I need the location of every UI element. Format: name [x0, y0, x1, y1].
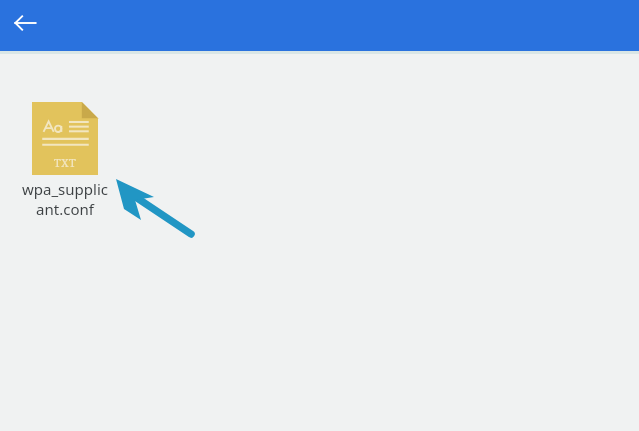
staticText: wpa_supplicant.conf: [19, 179, 111, 219]
staticText: TXT: [54, 155, 77, 170]
button[interactable]: Back: [10, 7, 42, 39]
button[interactable]: TXT: [10, 96, 120, 231]
